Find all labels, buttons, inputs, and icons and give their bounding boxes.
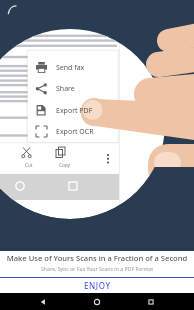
button[interactable]: Share (28, 78, 118, 99)
staticText: Export OCR (56, 127, 94, 137)
button[interactable]: Recents (140, 293, 162, 310)
button[interactable]: Send fax (28, 57, 118, 78)
button[interactable]: Export OCR (28, 121, 118, 142)
staticText: Cut (25, 162, 33, 168)
button[interactable]: ENJOY (0, 278, 194, 293)
button[interactable]: Export PDF (28, 100, 118, 121)
staticText: Export PDF (56, 106, 93, 116)
button[interactable]: Back (32, 293, 54, 310)
staticText: Make Use of Yours Scans in a Fraction of… (6, 253, 188, 263)
button[interactable]: Home (86, 293, 108, 310)
staticText: Copy (59, 162, 70, 168)
staticText: ENJOY (84, 280, 111, 291)
staticText: Send fax (56, 63, 85, 73)
staticText: Share (56, 84, 75, 94)
staticText: Share, Sync or Fax Your Scans in a PDF F… (6, 265, 188, 272)
